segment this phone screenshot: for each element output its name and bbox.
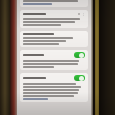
button[interactable]: More options <box>77 12 85 16</box>
button[interactable]: Toggle setting <box>74 52 85 58</box>
button[interactable]: Toggle setting <box>74 75 85 81</box>
button[interactable]: More options <box>20 10 88 28</box>
button[interactable]: Toggle setting <box>20 50 88 70</box>
button[interactable]: Toggle setting <box>20 73 88 102</box>
button[interactable] <box>20 31 88 47</box>
button[interactable] <box>20 0 88 7</box>
